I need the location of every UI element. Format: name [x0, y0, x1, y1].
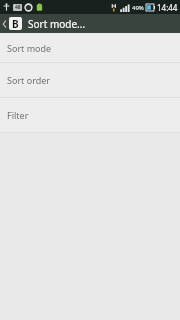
staticText: Sort order: [7, 74, 51, 86]
button[interactable]: Sort mode: [0, 33, 180, 62]
staticText: B: [12, 17, 19, 30]
staticText: 14:44: [157, 2, 178, 13]
staticText: 48: [15, 4, 21, 11]
staticText: Filter: [7, 109, 29, 121]
staticText: 49%: [132, 4, 144, 12]
button[interactable]: Navigate up: [0, 14, 25, 33]
button[interactable]: Filter: [0, 98, 180, 132]
button[interactable]: Sort order: [0, 63, 180, 97]
staticText: Sort mode...: [28, 17, 86, 31]
staticText: Sort mode: [7, 42, 52, 54]
